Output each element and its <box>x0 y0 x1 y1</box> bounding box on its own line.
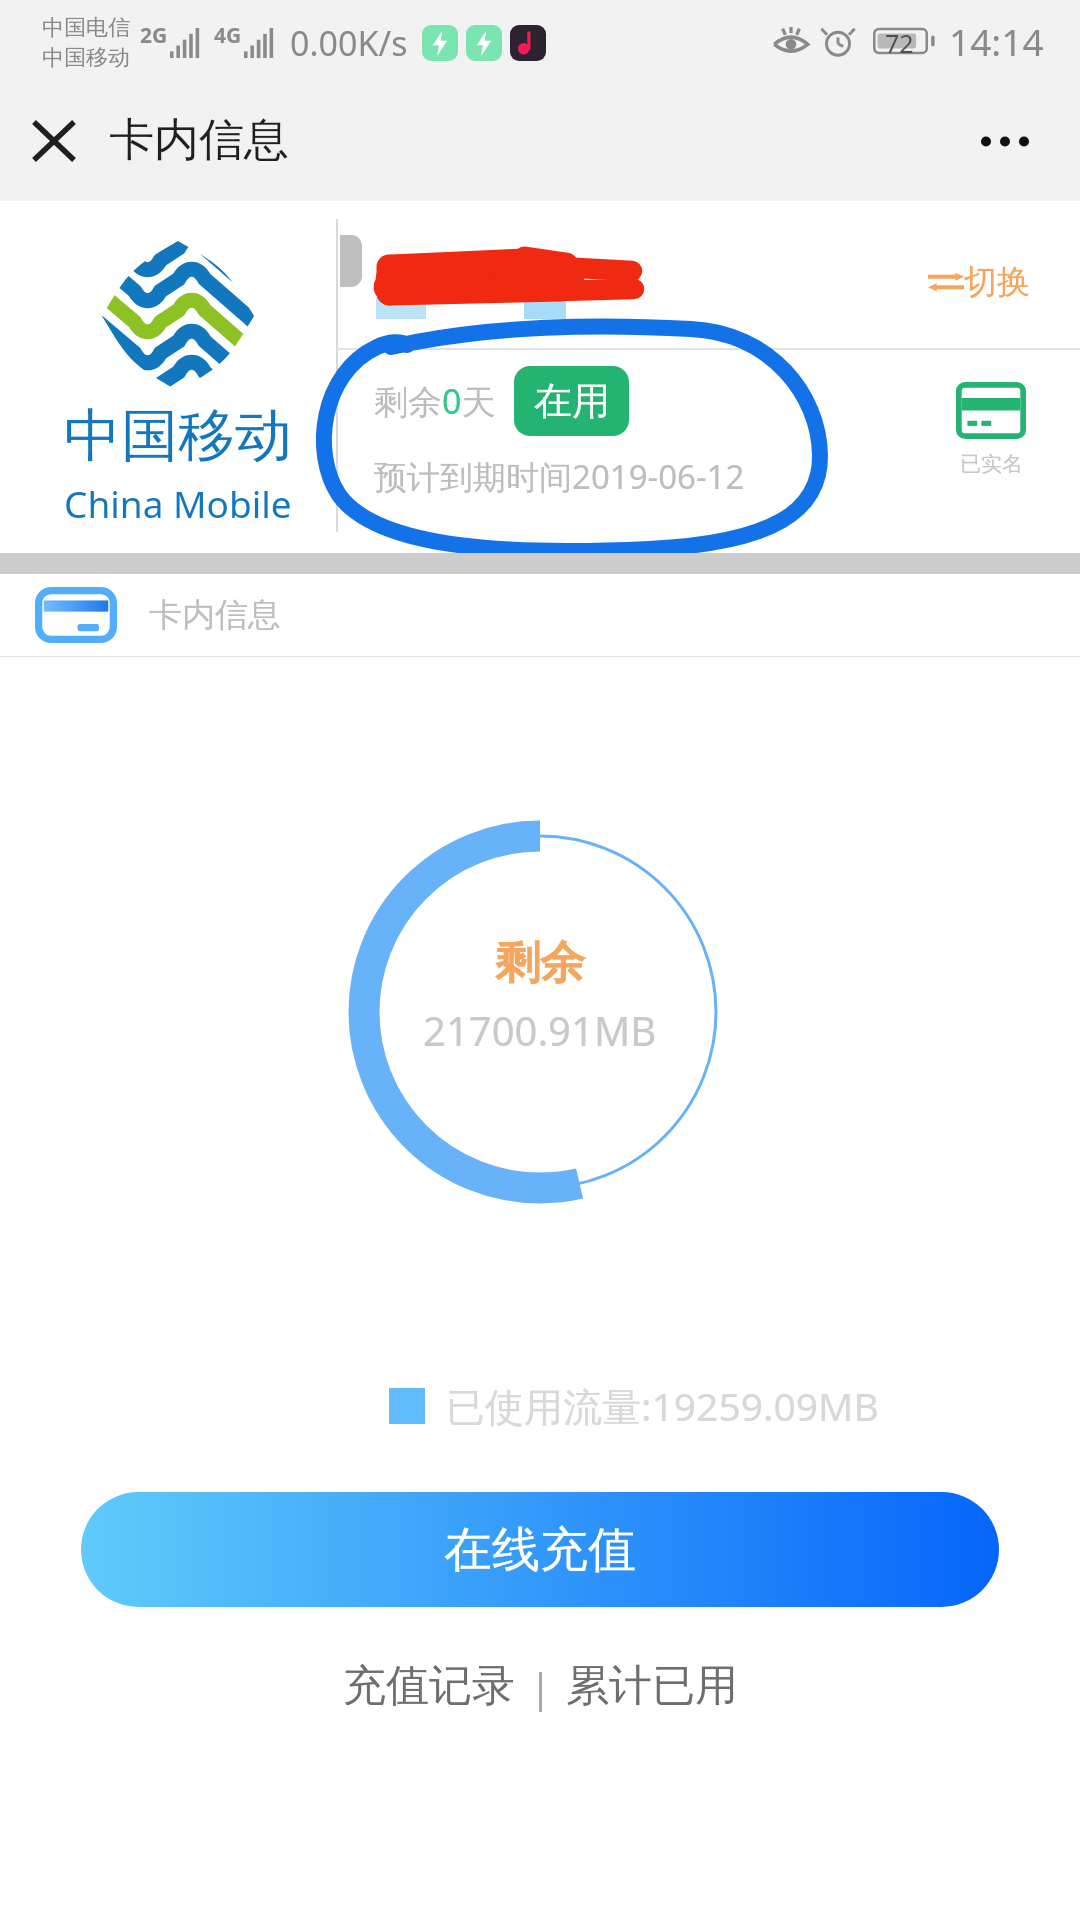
staticText: 已使用流量:19259.09MB <box>446 1379 879 1432</box>
button[interactable]: 已实名 <box>956 382 1026 477</box>
button[interactable]: 在线充值 <box>81 1492 999 1607</box>
staticText: 剩余 <box>495 935 585 992</box>
staticText: 剩余0天 <box>374 378 496 424</box>
staticText: 切换 <box>964 261 1030 303</box>
staticText: 72 <box>885 26 914 56</box>
button[interactable]: 卡内信息 <box>0 574 1080 656</box>
staticText: China Mobile <box>64 478 292 528</box>
button[interactable]: 在用 <box>514 366 629 436</box>
staticText: 4G <box>214 21 242 50</box>
button[interactable]: 切换 <box>928 261 1030 303</box>
staticText: 卡内信息 <box>149 594 281 636</box>
button[interactable]: 累计已用 <box>562 1659 742 1713</box>
staticText: 0.00K/s <box>290 20 408 66</box>
button[interactable]: 充值记录 <box>339 1659 519 1713</box>
staticText: | <box>519 1659 562 1713</box>
staticText: 累计已用 <box>566 1659 738 1713</box>
staticText: 在线充值 <box>444 1520 636 1580</box>
staticText: 21700.91MB <box>423 1003 657 1057</box>
staticText: 14:14 <box>949 16 1044 66</box>
staticText: 已实名 <box>960 451 1023 477</box>
staticText: 在用 <box>534 377 610 425</box>
staticText: 预计到期时间2019-06-12 <box>374 454 745 499</box>
button[interactable]: 更多 <box>974 110 1036 172</box>
staticText: 中国移动 <box>42 44 130 72</box>
staticText: 中国移动 <box>64 400 292 472</box>
staticText: 2G <box>140 21 168 50</box>
button[interactable]: 关闭 <box>20 107 88 175</box>
staticText: 充值记录 <box>343 1659 515 1713</box>
staticText: 卡内信息 <box>109 112 289 169</box>
staticText: 中国电信 <box>42 14 130 42</box>
